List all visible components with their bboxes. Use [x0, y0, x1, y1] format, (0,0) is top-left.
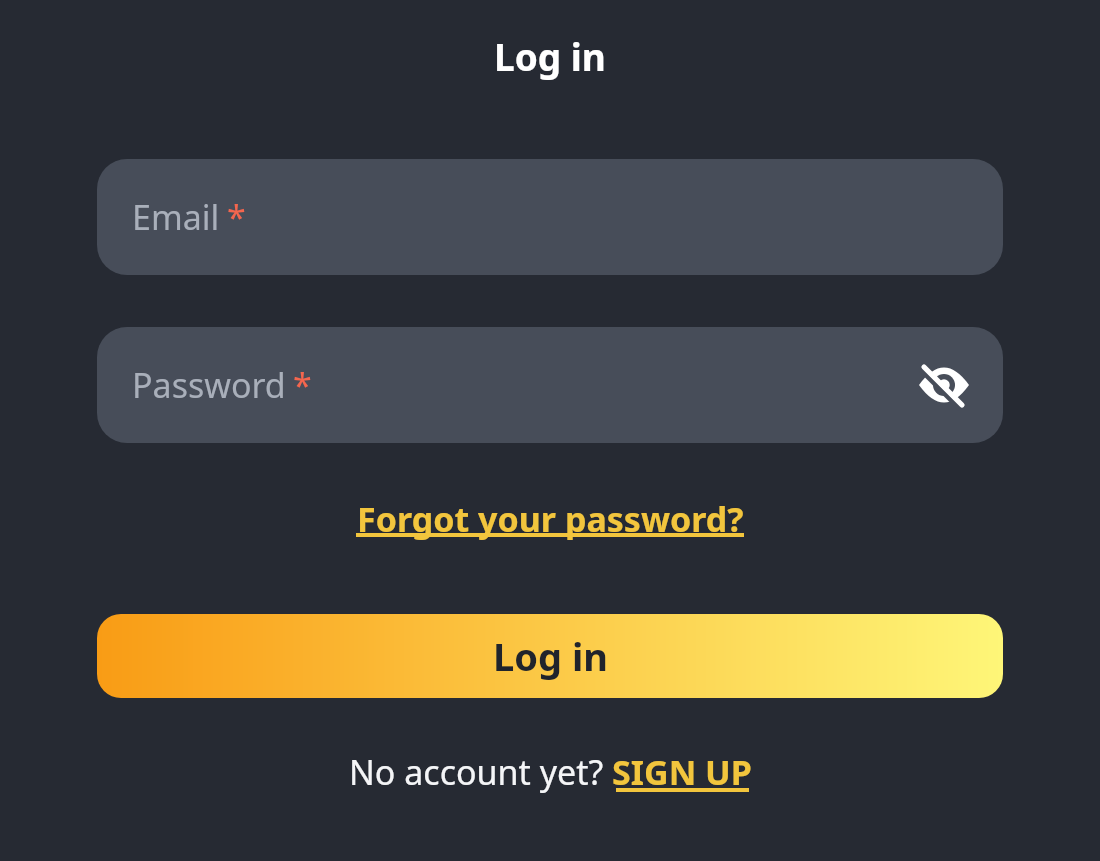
staticText: * — [293, 362, 312, 408]
staticText: Password — [132, 362, 286, 408]
staticText: Forgot your password? — [357, 496, 744, 542]
staticText: Email — [132, 194, 220, 240]
staticText: Log in — [493, 630, 608, 682]
staticText: No account yet? SIGN UP — [349, 749, 752, 795]
staticText: * — [227, 194, 246, 240]
staticText: Log in — [494, 31, 606, 81]
